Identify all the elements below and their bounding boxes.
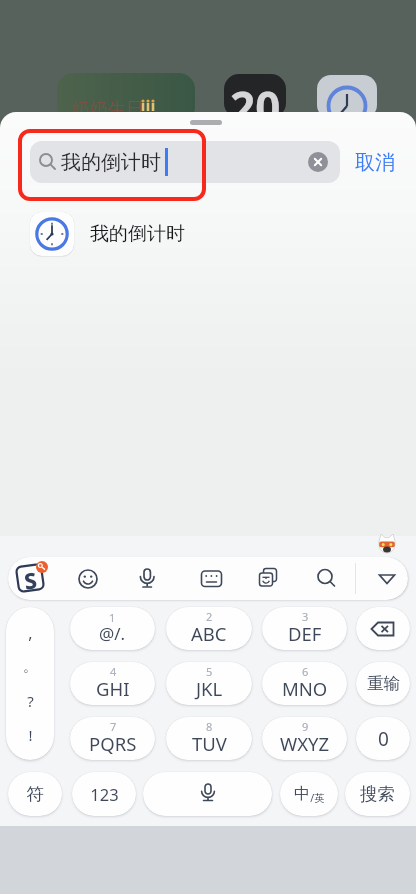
button[interactable]: 4: [70, 662, 155, 705]
button[interactable]: [14, 206, 402, 262]
staticText: 5: [206, 664, 213, 679]
button[interactable]: [200, 569, 224, 589]
button[interactable]: 中: [280, 772, 338, 816]
staticText: 6: [302, 664, 309, 679]
staticText: 。: [23, 658, 37, 676]
staticText: JKL: [196, 676, 223, 701]
button[interactable]: [136, 567, 158, 591]
staticText: !: [28, 725, 33, 745]
button[interactable]: 1: [70, 607, 155, 650]
button[interactable]: 6: [262, 662, 347, 705]
button[interactable]: [143, 772, 272, 816]
button[interactable]: 2: [166, 607, 252, 650]
staticText: 我的倒计时: [61, 150, 161, 175]
button[interactable]: 3: [262, 607, 347, 650]
staticText: 奶奶生日: [72, 98, 144, 121]
button[interactable]: [375, 567, 399, 591]
staticText: MNO: [282, 676, 328, 701]
staticText: 符: [26, 783, 44, 805]
button[interactable]: 取消: [344, 141, 406, 183]
staticText: 9: [302, 719, 309, 734]
staticText: 重输: [367, 673, 400, 694]
staticText: 123: [90, 783, 119, 805]
button[interactable]: [30, 141, 340, 183]
button[interactable]: 符: [8, 772, 62, 816]
button[interactable]: S: [13, 559, 49, 595]
button[interactable]: 8: [166, 717, 252, 760]
button[interactable]: 9: [262, 717, 347, 760]
staticText: /英: [310, 791, 325, 805]
staticText: DEF: [288, 621, 322, 646]
staticText: 我的倒计时: [90, 222, 185, 246]
staticText: PQRS: [89, 731, 137, 756]
button[interactable]: 搜索: [345, 772, 410, 816]
staticText: @/.: [99, 622, 126, 645]
button[interactable]: [257, 567, 280, 589]
staticText: 2: [206, 609, 213, 624]
button[interactable]: [356, 607, 410, 650]
staticText: ,: [28, 622, 33, 644]
staticText: ?: [27, 691, 34, 711]
staticText: 搜索: [360, 783, 395, 805]
button[interactable]: [376, 532, 398, 555]
button[interactable]: 123: [72, 772, 136, 816]
button[interactable]: [306, 150, 330, 174]
staticText: 中: [294, 784, 310, 804]
staticText: 7: [110, 719, 117, 734]
staticText: 4: [110, 664, 117, 679]
staticText: 8: [206, 719, 213, 734]
staticText: 1: [109, 610, 116, 625]
button[interactable]: [77, 568, 99, 590]
staticText: 20: [230, 77, 281, 123]
staticText: S: [22, 564, 39, 592]
button[interactable]: 5: [166, 662, 252, 705]
button[interactable]: 0: [356, 717, 410, 760]
staticText: ABC: [191, 621, 227, 646]
staticText: 取消: [355, 150, 395, 175]
staticText: 0: [378, 726, 389, 752]
staticText: TUV: [192, 731, 227, 756]
staticText: WXYZ: [280, 731, 330, 756]
staticText: 3: [302, 609, 309, 624]
button[interactable]: 重输: [356, 662, 410, 705]
button[interactable]: 7: [70, 717, 155, 760]
button[interactable]: [316, 568, 337, 589]
staticText: GHI: [96, 676, 130, 701]
button[interactable]: ,: [6, 607, 54, 760]
